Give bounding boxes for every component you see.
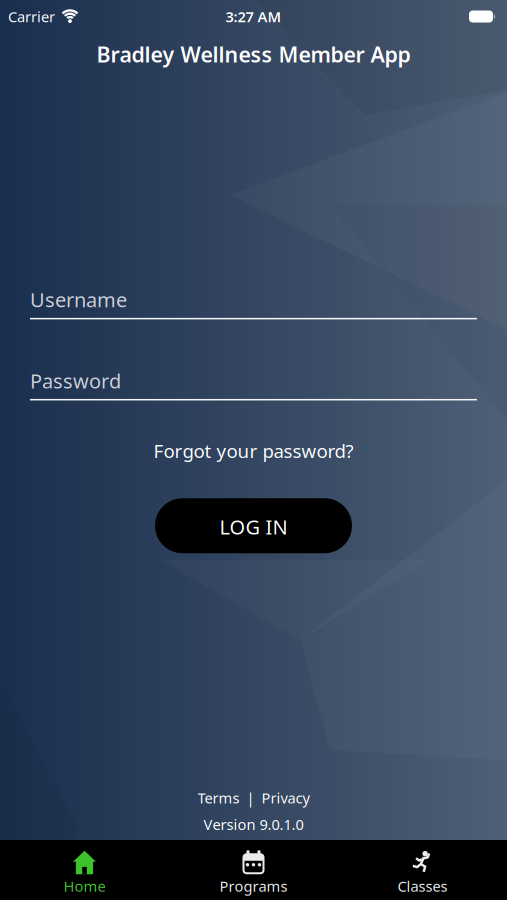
staticText: Privacy <box>261 788 309 807</box>
staticText: Home <box>63 876 105 896</box>
staticText: Username <box>30 286 127 313</box>
button[interactable]: Forgot your password? <box>153 438 353 463</box>
button[interactable]: Terms <box>197 788 239 807</box>
staticText: LOG IN <box>219 513 287 540</box>
staticText: Forgot your password? <box>153 438 353 463</box>
button[interactable]: Programs <box>169 850 338 896</box>
staticText: Password <box>30 367 121 394</box>
button[interactable]: LOG IN <box>155 498 352 553</box>
staticText: | <box>246 788 254 807</box>
staticText: 3:27 AM <box>225 7 281 26</box>
staticText: Carrier <box>8 7 55 26</box>
staticText: Programs <box>219 876 287 896</box>
button[interactable]: Classes <box>338 850 507 896</box>
staticText: Bradley Wellness Member App <box>96 40 410 68</box>
button[interactable]: Home <box>0 850 169 896</box>
button[interactable]: Privacy <box>261 788 309 807</box>
staticText: Terms <box>197 788 239 807</box>
staticText: Classes <box>397 876 447 896</box>
staticText: Version 9.0.1.0 <box>203 814 303 834</box>
